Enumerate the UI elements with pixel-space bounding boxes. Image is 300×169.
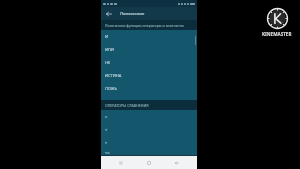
staticText: И — [105, 34, 109, 39]
staticText: <= — [105, 150, 110, 155]
button[interactable]: < — [101, 123, 197, 136]
staticText: НЕ — [105, 60, 111, 65]
staticText: Логические — [120, 11, 145, 17]
staticText: ЛОЖЬ — [105, 86, 117, 91]
button[interactable]: > — [101, 136, 197, 149]
button[interactable]: <= — [101, 149, 197, 155]
button[interactable]: НЕ — [101, 56, 197, 69]
button[interactable]: Назад — [104, 9, 114, 19]
button[interactable]: ИСТИНА — [101, 69, 197, 82]
staticText: > — [105, 140, 108, 145]
staticText: Логические функции операторы и константы — [105, 23, 184, 28]
staticText: KINEMASTER — [262, 31, 292, 37]
button[interactable]: ИЛИ — [101, 43, 197, 56]
button[interactable]: И — [101, 30, 197, 43]
button[interactable]: Назад — [169, 156, 185, 169]
button[interactable]: Главный экран — [141, 156, 157, 169]
button[interactable]: ЛОЖЬ — [101, 82, 197, 95]
staticText: = — [105, 114, 108, 119]
staticText: < — [105, 127, 108, 132]
staticText: ИСТИНА — [105, 73, 122, 78]
button[interactable]: Недавние — [113, 156, 129, 169]
staticText: ОПЕРАТОРЫ СРАВНЕНИЯ — [105, 103, 149, 108]
staticText: ИЛИ — [105, 47, 114, 52]
button[interactable]: = — [101, 110, 197, 123]
